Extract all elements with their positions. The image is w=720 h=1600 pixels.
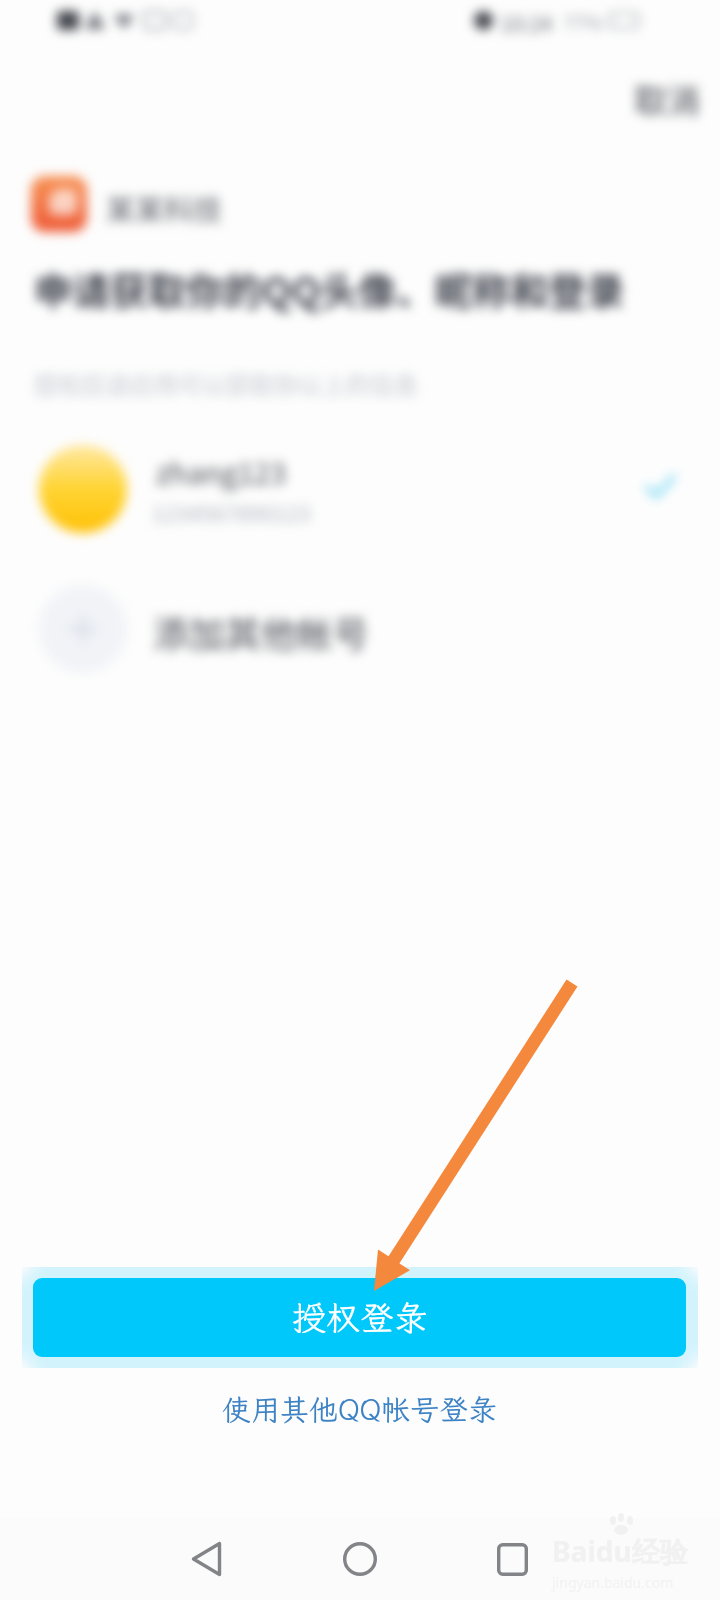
staticText: 申请获取你的QQ头像、昵称和登录 [34, 261, 625, 316]
button[interactable]: Back [166, 1519, 246, 1599]
button[interactable]: 授权登录 [33, 1278, 686, 1357]
button[interactable]: zhang123 [0, 440, 720, 540]
button[interactable]: 使用其他QQ帐号登录 [212, 1386, 508, 1432]
staticText: 授权后该应用可以获取你以上的信息 [34, 366, 418, 401]
staticText: 1234567890123 [152, 496, 311, 528]
staticText: 10:24 [500, 8, 553, 32]
staticText: 77% [564, 8, 603, 32]
staticText: 取消 [634, 75, 700, 123]
staticText: 添加其他帐号 [153, 606, 370, 658]
staticText: 某某科技 [106, 187, 223, 229]
button[interactable]: 取消 [630, 71, 704, 127]
button[interactable]: Home [320, 1519, 400, 1599]
staticText: zhang123 [156, 450, 287, 492]
button[interactable]: Recents [472, 1519, 552, 1599]
staticText: 授权登录 [292, 1295, 428, 1340]
staticText: Baidu经验 [552, 1532, 688, 1570]
staticText: 使用其他QQ帐号登录 [222, 1390, 498, 1428]
button[interactable]: 添加其他帐号 [0, 580, 720, 676]
